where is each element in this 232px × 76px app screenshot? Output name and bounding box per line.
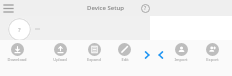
button[interactable]: Help — [139, 2, 151, 14]
button[interactable]: Previous — [155, 49, 166, 60]
button[interactable]: Import — [168, 43, 194, 69]
button[interactable]: Edit — [111, 43, 137, 69]
staticText: Edit — [121, 57, 129, 62]
button[interactable]: Unknown device node — [8, 18, 31, 41]
staticText: ? — [18, 26, 21, 34]
staticText: Expand — [87, 57, 101, 62]
staticText: ? — [144, 5, 147, 12]
button[interactable]: Export — [199, 43, 225, 69]
button[interactable]: Expand — [81, 43, 107, 69]
button[interactable]: Menu — [2, 2, 15, 15]
button[interactable]: Upload — [47, 43, 73, 69]
staticText: Import — [174, 57, 188, 62]
staticText: Export — [206, 57, 219, 62]
staticText: Download — [7, 57, 27, 62]
button[interactable]: Download — [4, 43, 30, 69]
staticText: Device Setup — [87, 4, 124, 12]
button[interactable]: Next — [141, 49, 152, 60]
staticText: Upload — [53, 57, 67, 62]
